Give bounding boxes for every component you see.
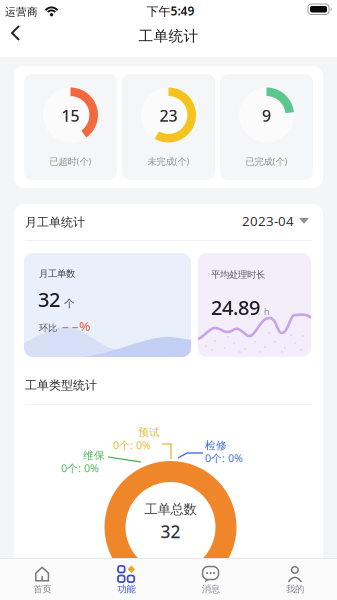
staticText: 预试 xyxy=(138,426,160,439)
staticText: 检修 xyxy=(205,439,227,452)
staticText: 已超时(个) xyxy=(49,155,91,167)
staticText: 月工单统计 xyxy=(25,215,85,230)
staticText: 0个: 0% xyxy=(205,451,243,465)
staticText: 消息 xyxy=(202,583,220,595)
button[interactable]: 消息 xyxy=(168,558,253,600)
staticText: 运营商 xyxy=(5,5,38,19)
staticText: 个 xyxy=(64,297,75,310)
button[interactable]: 首页 xyxy=(0,558,84,600)
staticText: 9 xyxy=(262,105,271,126)
staticText: 23 xyxy=(159,105,177,126)
staticText: 32 xyxy=(160,520,180,543)
staticText: 环比 xyxy=(39,322,57,334)
staticText: 功能 xyxy=(117,583,135,595)
staticText: 32 xyxy=(38,286,60,313)
button[interactable]: 我的 xyxy=(253,558,337,600)
staticText: h xyxy=(264,305,270,318)
staticText: 2023-04 xyxy=(242,212,294,230)
staticText: 工单统计 xyxy=(138,27,198,45)
staticText: 平均处理时长 xyxy=(211,269,265,280)
staticText: 已完成(个) xyxy=(245,155,287,167)
staticText: 工单类型统计 xyxy=(25,378,97,393)
staticText: – –% xyxy=(62,317,90,335)
staticText: 下午5:49 xyxy=(146,3,194,19)
staticText: 0个: 0% xyxy=(61,461,99,475)
button[interactable]: 功能 xyxy=(84,558,168,600)
staticText: 24.89 xyxy=(211,294,260,321)
staticText: 我的 xyxy=(286,583,304,595)
staticText: 首页 xyxy=(33,583,51,595)
staticText: 0个: 0% xyxy=(113,438,151,452)
button[interactable]: 2023-04 xyxy=(242,212,309,230)
staticText: 工单总数 xyxy=(144,501,196,517)
staticText: 月工单数 xyxy=(39,268,75,279)
button[interactable]: Back xyxy=(4,22,32,44)
staticText: 维保 xyxy=(83,449,105,462)
staticText: 未完成(个) xyxy=(147,155,189,167)
staticText: 15 xyxy=(61,105,79,126)
